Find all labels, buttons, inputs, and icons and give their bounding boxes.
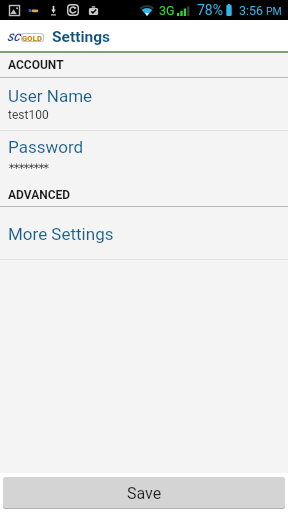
button[interactable]: More Settings (0, 207, 288, 259)
staticText: ADVANCED (8, 188, 71, 202)
staticText: User Name (8, 86, 93, 106)
staticText: Settings (52, 28, 111, 46)
staticText: 3G (159, 3, 175, 18)
staticText: ACCOUNT (8, 58, 64, 72)
staticText: Password (8, 137, 84, 157)
button[interactable]: Save (3, 477, 285, 508)
staticText: ∗∗∗∗∗∗∗∗ (8, 161, 48, 171)
staticText: test100 (8, 108, 49, 122)
button[interactable]: Password (0, 131, 288, 183)
staticText: 78% (197, 2, 223, 18)
staticText: More Settings (8, 224, 114, 244)
other: SC Gold logo (0, 20, 288, 51)
staticText: 3:56 (239, 3, 264, 18)
button[interactable]: User Name (0, 78, 288, 130)
staticText: PM (266, 5, 282, 17)
staticText: Save (127, 484, 162, 503)
staticText: GOLD (22, 34, 43, 41)
staticText: SC (7, 31, 20, 43)
